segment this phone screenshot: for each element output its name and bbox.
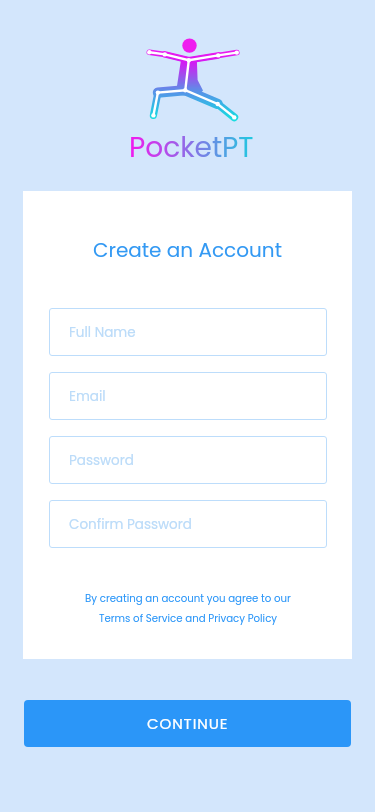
button[interactable]: By creating an account you agree to our … (63, 583, 312, 617)
button[interactable]: CONTINUE (24, 700, 351, 747)
staticText: Confirm Password (69, 515, 192, 534)
staticText: PocketPT (129, 128, 254, 167)
staticText: Create an Account (93, 236, 282, 264)
staticText: Email (69, 387, 106, 406)
staticText: Full Name (69, 323, 136, 342)
button[interactable]: Confirm Password (49, 500, 327, 548)
button[interactable]: Email (49, 372, 327, 420)
staticText: Password (69, 451, 134, 470)
button[interactable]: Password (49, 436, 327, 484)
other: PocketPT logo (145, 38, 240, 119)
staticText: CONTINUE (147, 713, 229, 734)
staticText: By creating an account you agree to our … (85, 591, 291, 625)
button[interactable]: Full Name (49, 308, 327, 356)
